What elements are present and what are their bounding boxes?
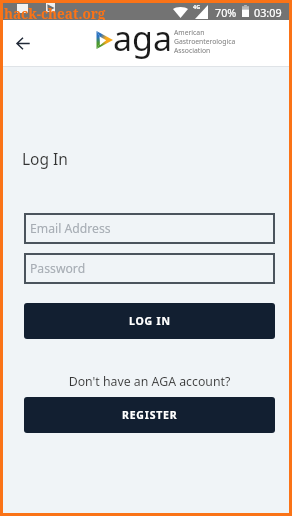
staticText: American xyxy=(174,28,205,37)
staticText: Association xyxy=(174,46,211,55)
staticText: 4G xyxy=(193,3,201,10)
button[interactable]: Back xyxy=(8,28,38,58)
staticText: 03:09 xyxy=(254,5,282,20)
staticText: aga xyxy=(113,15,173,61)
button[interactable]: Email Address xyxy=(24,213,275,244)
staticText: REGISTER xyxy=(122,408,178,422)
staticText: Email Address xyxy=(30,220,111,237)
staticText: Password xyxy=(30,260,86,277)
staticText: Gastroenterologica xyxy=(174,37,236,46)
button[interactable]: REGISTER xyxy=(24,397,275,433)
button[interactable]: LOG IN xyxy=(24,303,275,339)
button[interactable]: Password xyxy=(24,253,275,284)
staticText: 70% xyxy=(215,5,237,20)
staticText: LOG IN xyxy=(129,314,171,328)
staticText: Log In xyxy=(22,148,68,169)
staticText: hack-cheat.org xyxy=(4,5,106,22)
staticText: Don't have an AGA account? xyxy=(24,373,275,390)
